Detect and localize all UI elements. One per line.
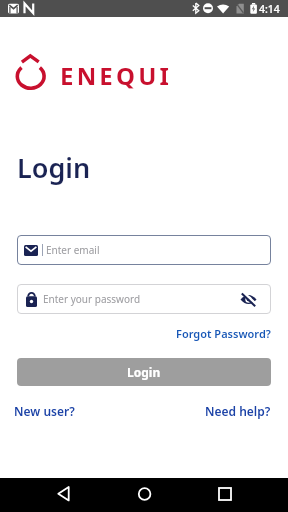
staticText: Enter email [46,243,100,257]
button[interactable] [201,478,249,512]
button[interactable]: Enter email [17,235,271,265]
staticText: Login [127,364,161,380]
staticText: Login [17,149,91,186]
staticText: Enter your password [43,292,141,306]
button[interactable]: Enter your password [17,284,271,314]
button[interactable]: Need help? [205,403,271,419]
staticText: ENEQUI [60,59,173,92]
button[interactable]: Login [17,358,271,386]
button[interactable] [120,478,168,512]
staticText: 4:14 [259,2,280,16]
button[interactable]: Forgot Password? [176,326,271,341]
button[interactable]: New user? [14,403,75,419]
button[interactable] [39,478,87,512]
